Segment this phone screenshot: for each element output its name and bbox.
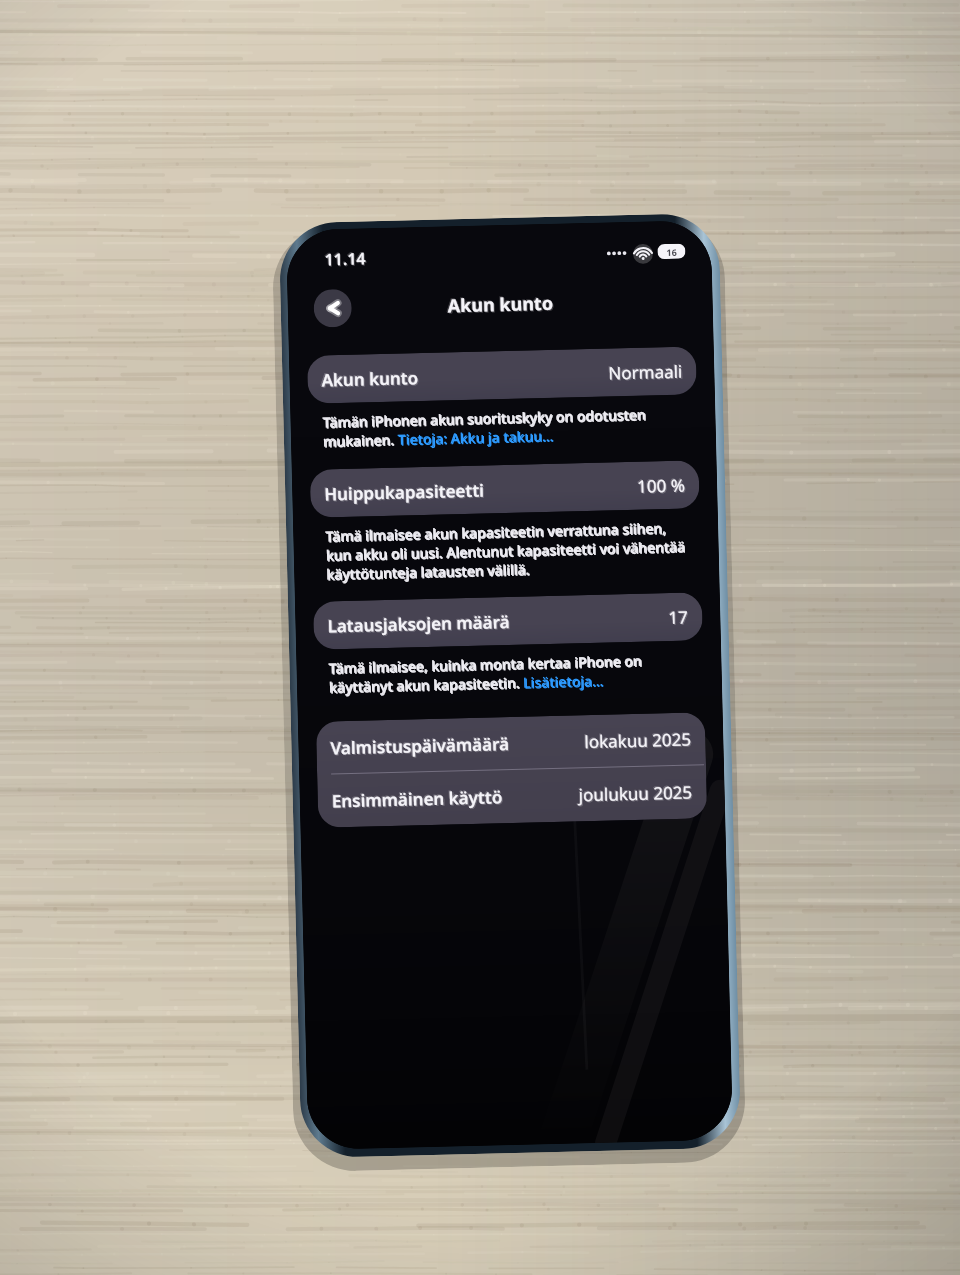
staticText: 17 xyxy=(668,606,689,629)
button[interactable]: Back xyxy=(313,289,352,328)
staticText: Latausjaksojen määrä xyxy=(326,609,510,636)
staticText: 100 % xyxy=(636,473,684,497)
staticText: Akun kunto xyxy=(320,365,418,391)
staticText: Normaali xyxy=(607,359,682,383)
staticText: Latausjaksojen määrä xyxy=(327,610,511,637)
staticText: 100 % xyxy=(637,474,685,498)
staticText: Tämä ilmaisee, kuinka monta kertaa iPhon… xyxy=(328,649,696,696)
staticText: Valmistuspäivämäärä xyxy=(330,732,510,759)
button[interactable]: Huippukapasiteetti xyxy=(310,460,700,518)
staticText: Tämän iPhonen akun suorituskyky on odotu… xyxy=(323,404,691,451)
staticText: Akun kunto xyxy=(448,292,555,319)
staticText: 17 xyxy=(667,605,688,628)
staticText: lokakuu 2025 xyxy=(585,729,693,754)
staticText: joulukuu 2025 xyxy=(579,781,694,807)
staticText: Latausjaksojen määrä xyxy=(328,611,512,638)
staticText: Akun kunto xyxy=(446,290,553,317)
staticText: joulukuu 2025 xyxy=(578,781,693,806)
staticText: lokakuu 2025 xyxy=(583,727,691,752)
staticText: Ensimmäinen käyttö xyxy=(331,785,503,812)
staticText: 11.14 xyxy=(323,246,366,269)
button[interactable]: Latausjaksojen määrä xyxy=(313,592,703,650)
staticText: Normaali xyxy=(608,360,683,384)
staticText: Huippukapasiteetti xyxy=(323,478,483,504)
staticText: Normaali xyxy=(609,361,684,385)
staticText: Tämän iPhonen akun suorituskyky on odotu… xyxy=(322,403,690,450)
staticText: Tämä ilmaisee akun kapasiteetin verrattu… xyxy=(326,518,694,584)
button[interactable]: Ensimmäinen käyttö xyxy=(317,765,707,828)
staticText: 100 % xyxy=(638,475,686,499)
staticText: 17 xyxy=(669,607,690,630)
staticText: Ensimmäinen käyttö xyxy=(332,786,504,813)
staticText: joulukuu 2025 xyxy=(577,780,692,805)
staticText: Valmistuspäivämäärä xyxy=(331,733,511,760)
staticText: Akun kunto xyxy=(322,367,420,392)
staticText: Valmistuspäivämäärä xyxy=(329,731,509,758)
staticText: Huippukapasiteetti xyxy=(324,479,484,505)
staticText: Akun kunto xyxy=(321,366,419,391)
staticText: 16 xyxy=(666,246,678,258)
staticText: Huippukapasiteetti xyxy=(325,480,485,506)
staticText: Akun kunto xyxy=(447,291,554,318)
button[interactable]: Akun kunto xyxy=(307,346,697,404)
button[interactable]: Valmistuspäivämäärä xyxy=(316,712,706,774)
staticText: 11.14 xyxy=(324,247,367,270)
staticText: Tämä ilmaisee, kuinka monta kertaa iPhon… xyxy=(329,650,697,697)
staticText: Ensimmäinen käyttö xyxy=(330,784,502,811)
staticText: Tämä ilmaisee akun kapasiteetin verrattu… xyxy=(325,517,693,583)
staticText: lokakuu 2025 xyxy=(584,728,692,753)
staticText: 11.14 xyxy=(325,248,368,271)
